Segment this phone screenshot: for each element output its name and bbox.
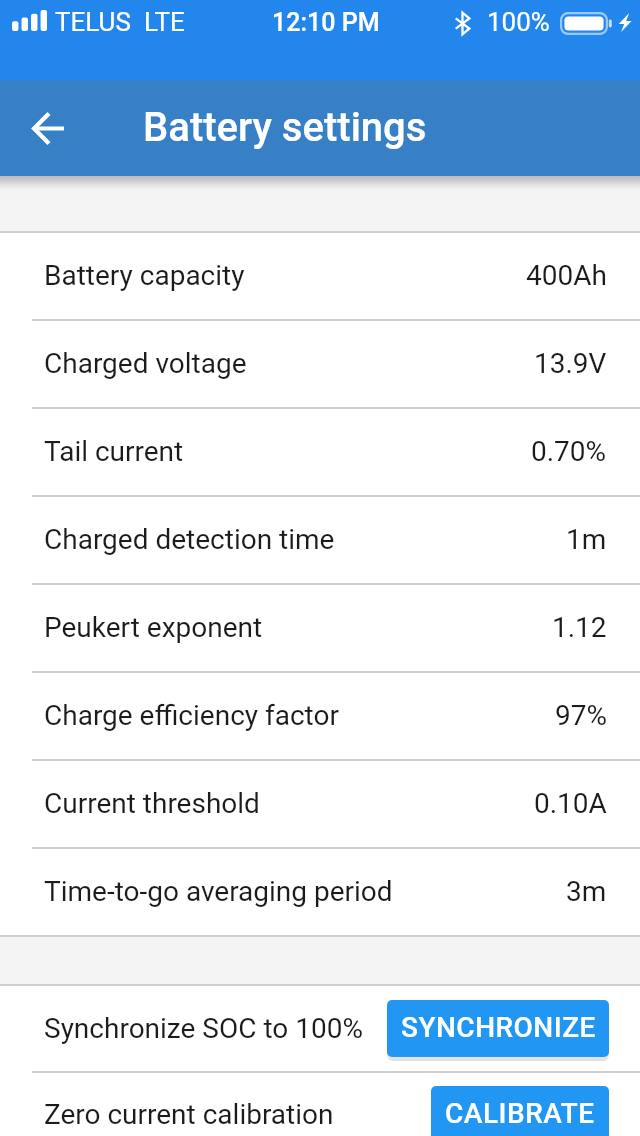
button[interactable]: Peukert exponent bbox=[0, 585, 640, 671]
staticText: Time-to-go averaging period bbox=[44, 875, 393, 908]
button[interactable]: Charge efficiency factor bbox=[0, 673, 640, 759]
button[interactable]: Charged voltage bbox=[0, 321, 640, 407]
staticText: LTE bbox=[144, 7, 185, 37]
staticText: Battery settings bbox=[143, 104, 427, 151]
staticText: 0.70% bbox=[531, 435, 607, 468]
staticText: Charge efficiency factor bbox=[44, 699, 339, 732]
staticText: CALIBRATE bbox=[445, 1097, 595, 1130]
button[interactable]: Zero current calibration bbox=[0, 1073, 640, 1136]
staticText: 1.12 bbox=[552, 611, 607, 644]
button[interactable]: Time-to-go averaging period bbox=[0, 849, 640, 935]
staticText: SYNCHRONIZE bbox=[401, 1011, 596, 1044]
staticText: 100% bbox=[487, 7, 550, 37]
staticText: 12:10 PM bbox=[272, 8, 380, 37]
staticText: 13.9V bbox=[534, 347, 607, 380]
staticText: Zero current calibration bbox=[44, 1098, 334, 1131]
staticText: 3m bbox=[566, 875, 607, 908]
staticText: 0.10A bbox=[534, 787, 607, 820]
button[interactable]: Current threshold bbox=[0, 761, 640, 847]
button[interactable]: Battery capacity bbox=[0, 233, 640, 319]
staticText: Current threshold bbox=[44, 787, 260, 820]
button[interactable]: SYNCHRONIZE bbox=[387, 1000, 609, 1057]
staticText: TELUS bbox=[55, 7, 131, 37]
staticText: Synchronize SOC to 100% bbox=[44, 1012, 363, 1045]
button[interactable]: Charged detection time bbox=[0, 497, 640, 583]
staticText: Charged detection time bbox=[44, 523, 335, 556]
staticText: 97% bbox=[555, 699, 607, 732]
staticText: 400Ah bbox=[526, 259, 607, 292]
button[interactable]: Back bbox=[15, 96, 79, 160]
staticText: Peukert exponent bbox=[44, 611, 263, 644]
staticText: Battery capacity bbox=[44, 259, 245, 292]
button[interactable]: Synchronize SOC to 100% bbox=[0, 986, 640, 1071]
staticText: Charged voltage bbox=[44, 347, 247, 380]
staticText: 1m bbox=[566, 523, 607, 556]
staticText: Tail current bbox=[44, 435, 184, 468]
button[interactable]: CALIBRATE bbox=[431, 1086, 609, 1136]
button[interactable]: Tail current bbox=[0, 409, 640, 495]
